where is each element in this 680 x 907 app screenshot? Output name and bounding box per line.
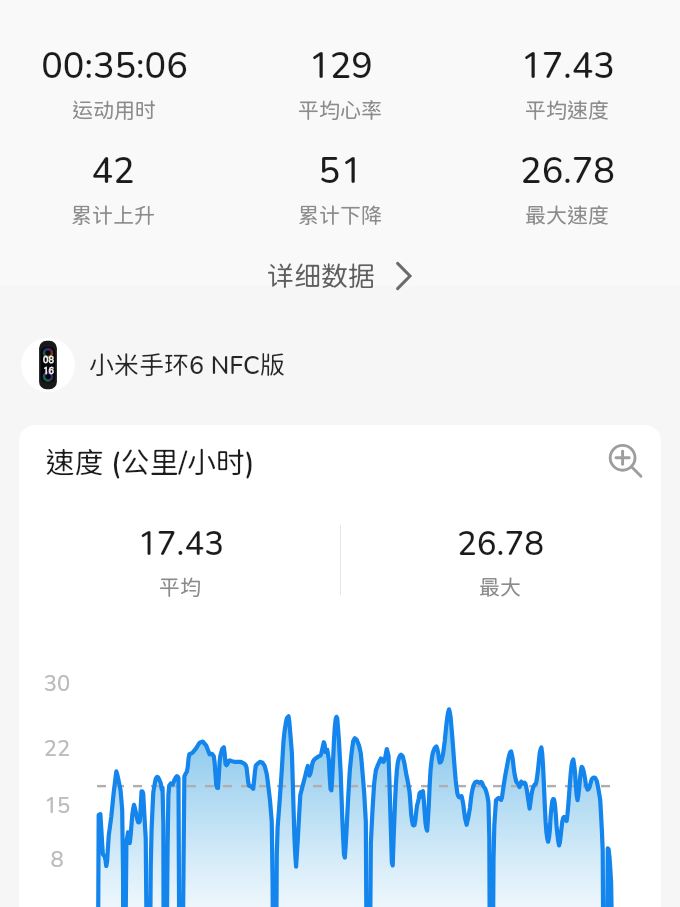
button[interactable]: 51: [240, 148, 440, 228]
button[interactable]: 129: [240, 43, 440, 123]
staticText: 8: [40, 846, 74, 872]
staticText: 15: [40, 792, 74, 818]
button[interactable]: 17.43: [467, 43, 667, 123]
staticText: 速度 (公里/小时): [45, 445, 255, 479]
button[interactable]: 详细数据: [259, 255, 422, 297]
staticText: 51: [318, 148, 362, 190]
staticText: 运动用时: [72, 98, 156, 123]
staticText: 16: [43, 365, 54, 376]
staticText: 17.43: [137, 523, 224, 562]
staticText: 累计下降: [298, 203, 382, 228]
staticText: 17.43: [520, 43, 615, 85]
staticText: 26.78: [457, 523, 544, 562]
staticText: 平均速度: [525, 98, 609, 123]
staticText: 详细数据: [267, 260, 375, 292]
staticText: 30: [40, 670, 74, 696]
staticText: 08: [43, 354, 54, 365]
staticText: 42: [91, 148, 135, 190]
button[interactable]: 26.78: [467, 148, 667, 228]
staticText: 00:35:06: [41, 43, 188, 85]
staticText: 129: [308, 43, 373, 85]
staticText: 小米手环6 NFC版: [89, 350, 285, 380]
button[interactable]: Zoom in: [601, 437, 649, 485]
button[interactable]: 00:35:06: [14, 43, 214, 123]
staticText: 累计上升: [71, 203, 155, 228]
button[interactable]: 08: [15, 329, 335, 401]
staticText: 22: [40, 735, 74, 761]
button[interactable]: 42: [13, 148, 213, 228]
staticText: 26.78: [520, 148, 615, 190]
button[interactable]: 速度 (公里/小时): [19, 425, 661, 907]
staticText: 最大速度: [525, 203, 609, 228]
staticText: 平均: [159, 575, 201, 600]
staticText: 平均心率: [298, 98, 382, 123]
staticText: 最大: [479, 575, 521, 600]
